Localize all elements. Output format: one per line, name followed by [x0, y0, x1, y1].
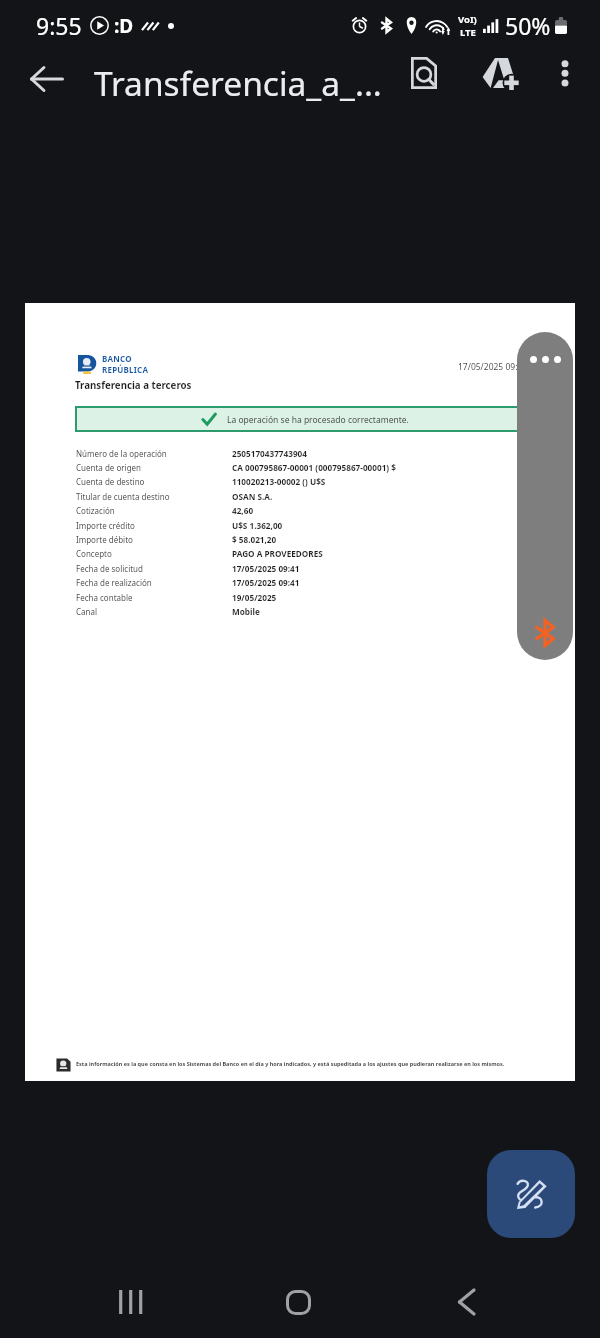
- staticText: Importe débito: [76, 534, 133, 545]
- staticText: Cuenta de origen: [76, 462, 142, 473]
- button[interactable]: Recents: [98, 1270, 162, 1334]
- staticText: Mobile: [232, 606, 260, 617]
- staticText: Cuenta de destino: [76, 476, 145, 487]
- staticText: OSAN S.A.: [232, 491, 273, 502]
- staticText: Fecha contable: [76, 592, 133, 603]
- staticText: 19/05/2025: [232, 592, 277, 603]
- button[interactable]: Annotate: [487, 1150, 575, 1238]
- staticText: Importe crédito: [76, 520, 135, 531]
- staticText: PAGO A PROVEEDORES: [232, 548, 323, 559]
- staticText: Fecha de realización: [76, 577, 152, 588]
- staticText: :D: [114, 13, 134, 39]
- button[interactable]: Search document: [398, 47, 450, 99]
- button[interactable]: Save to Drive: [473, 47, 525, 99]
- staticText: 110020213-00002 () U$S: [232, 476, 326, 487]
- staticText: Fecha de solicitud: [76, 563, 143, 574]
- button[interactable]: Back: [15, 47, 79, 111]
- staticText: 17/05/2025 09:4: [458, 361, 523, 373]
- staticText: Cotización: [76, 505, 115, 516]
- staticText: 42,60: [232, 505, 254, 516]
- staticText: Transferencia_a_...: [94, 60, 382, 106]
- staticText: 2505170437743904: [232, 448, 307, 459]
- staticText: $ 58.021,20: [232, 534, 277, 545]
- staticText: 9:55: [36, 10, 82, 41]
- button[interactable]: Edge panel handle: [517, 332, 573, 660]
- button[interactable]: Back: [434, 1270, 498, 1334]
- staticText: LTE: [460, 26, 476, 39]
- button[interactable]: Home: [266, 1270, 330, 1334]
- staticText: CA 000795867-00001 (000795867-00001) $: [232, 462, 396, 473]
- staticText: 50%: [505, 10, 551, 41]
- staticText: REPÚBLICA: [102, 364, 149, 375]
- staticText: Canal: [76, 606, 98, 617]
- staticText: BANCO: [102, 353, 132, 364]
- staticText: Esta información es la que consta en los…: [76, 1060, 505, 1067]
- staticText: U$S 1.362,00: [232, 520, 283, 531]
- staticText: VoI): [458, 13, 477, 26]
- button[interactable]: More options: [539, 47, 591, 99]
- staticText: Transferencia a terceros: [75, 379, 192, 392]
- staticText: La operación se ha procesado correctamen…: [227, 414, 409, 426]
- staticText: 17/05/2025 09:41: [232, 563, 300, 574]
- staticText: Titular de cuenta destino: [76, 491, 170, 502]
- staticText: Número de la operación: [76, 448, 167, 459]
- staticText: 17/05/2025 09:41: [232, 577, 300, 588]
- staticText: Concepto: [76, 548, 112, 559]
